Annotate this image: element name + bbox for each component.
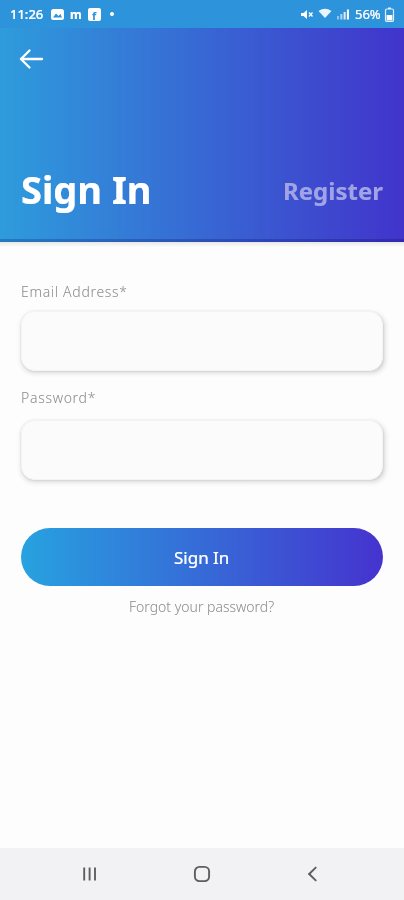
button[interactable]: Sign In — [21, 528, 383, 586]
staticText: m — [70, 6, 82, 22]
staticText: Sign In — [21, 163, 152, 215]
staticText: 11:26 — [10, 5, 44, 23]
staticText: Password* — [21, 388, 97, 407]
staticText: Email Address* — [21, 282, 128, 301]
staticText: 56% — [355, 5, 381, 23]
button[interactable]: Forgot your password? — [129, 597, 275, 616]
button[interactable] — [288, 850, 336, 898]
button[interactable] — [178, 850, 226, 898]
button[interactable]: Register — [283, 174, 383, 207]
button[interactable] — [10, 38, 52, 80]
staticText: Sign In — [174, 546, 230, 569]
staticText: f — [92, 8, 97, 21]
button[interactable] — [66, 850, 114, 898]
